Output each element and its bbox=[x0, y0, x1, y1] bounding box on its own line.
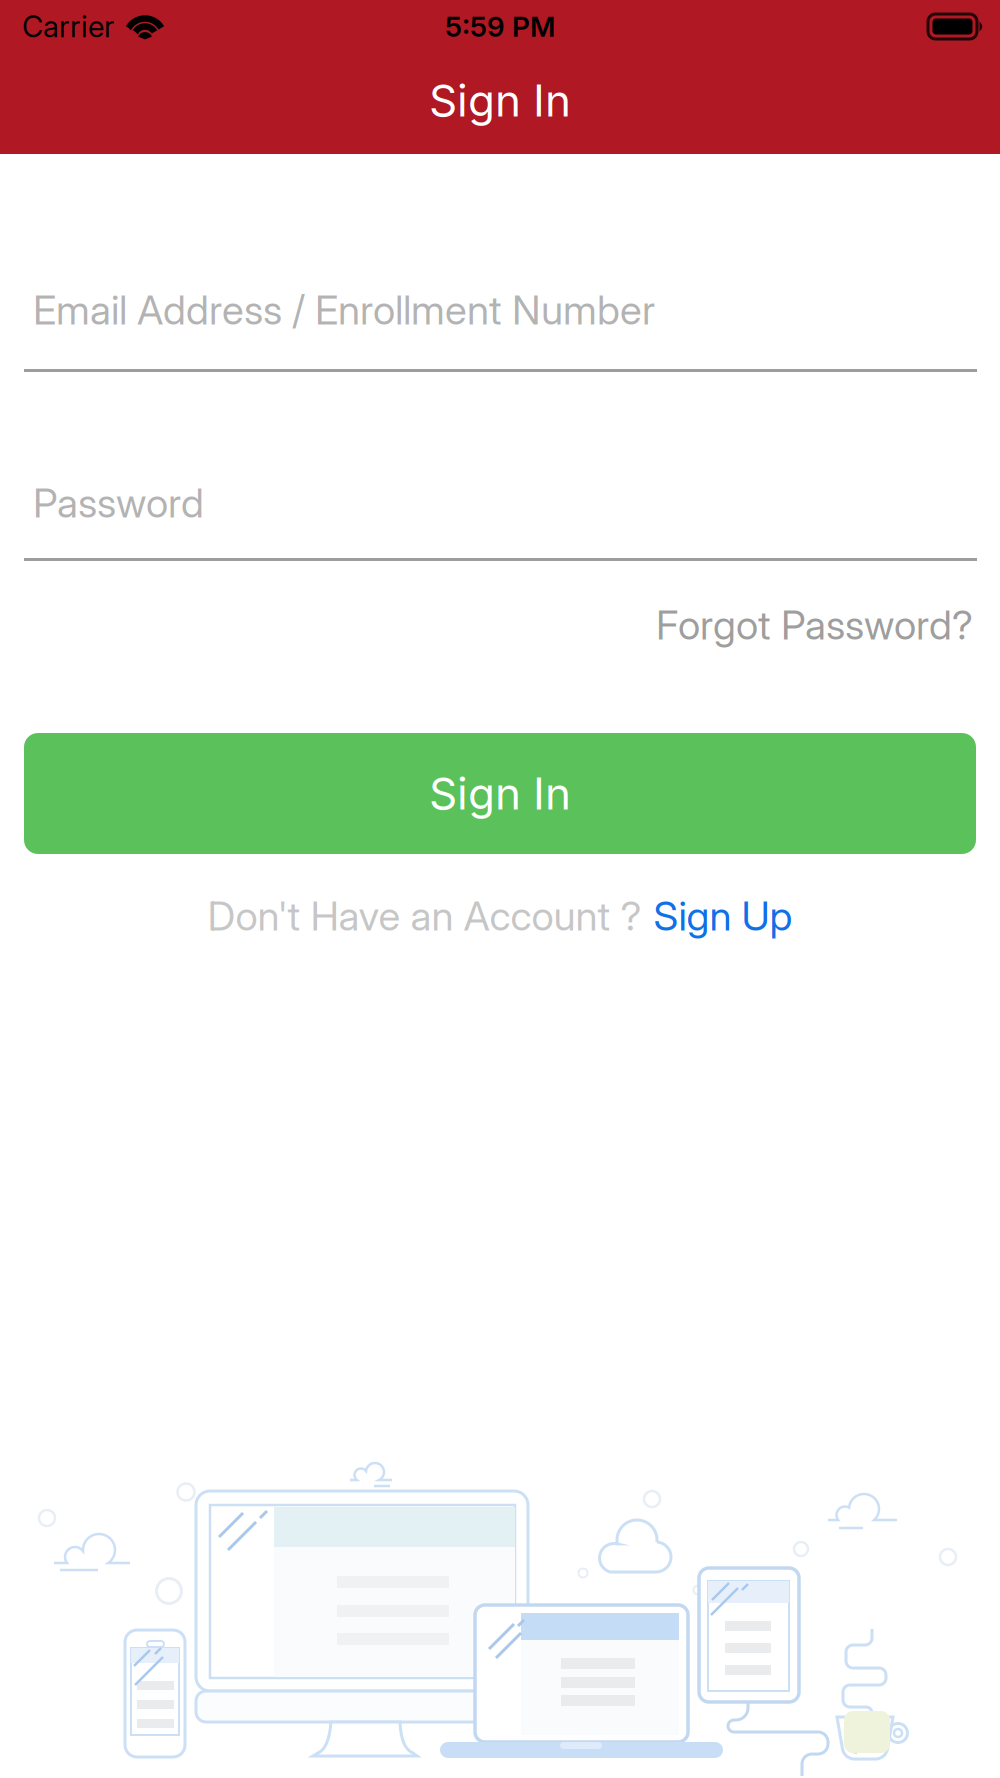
staticText: Password bbox=[33, 479, 204, 527]
staticText: Don't Have an Account ? bbox=[207, 892, 641, 940]
staticText: Carrier bbox=[22, 9, 114, 44]
staticText: 5:59 PM bbox=[445, 10, 555, 43]
staticText: Email Address / Enrollment Number bbox=[33, 286, 655, 334]
staticText: Sign Up bbox=[653, 892, 792, 940]
button[interactable]: Sign Up bbox=[653, 892, 792, 940]
staticText: Forgot Password? bbox=[656, 601, 973, 649]
button[interactable]: Sign In bbox=[24, 733, 976, 854]
staticText: Sign In bbox=[429, 767, 571, 819]
button[interactable]: Forgot Password? bbox=[656, 601, 973, 649]
staticText: Sign In bbox=[429, 74, 571, 126]
